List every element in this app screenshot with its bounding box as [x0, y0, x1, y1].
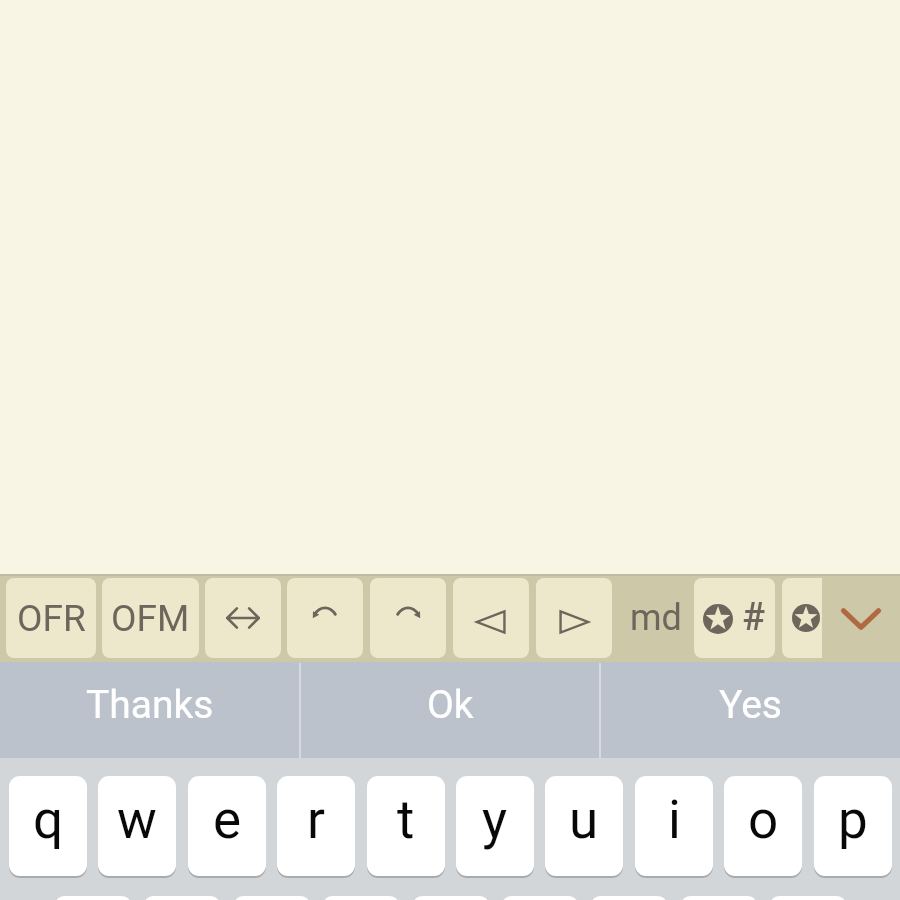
button[interactable]: Thanks [0, 662, 300, 759]
button[interactable]: e [188, 776, 266, 876]
button[interactable]: Undo [287, 578, 363, 658]
button[interactable]: Favorite [782, 578, 822, 658]
button[interactable]: y [456, 776, 534, 876]
staticText: w [117, 789, 157, 851]
staticText: OFR [17, 597, 86, 640]
staticText: OFM [111, 597, 190, 640]
button[interactable]: Resize [205, 578, 281, 658]
button[interactable]: s [143, 896, 221, 900]
button[interactable]: OFM [102, 578, 199, 658]
button[interactable]: u [545, 776, 623, 876]
button[interactable]: Ok [300, 662, 600, 759]
button[interactable]: Favorite [694, 578, 775, 658]
button[interactable]: Yes [600, 662, 900, 759]
button[interactable]: Collapse keyboard [826, 577, 896, 659]
staticText: Thanks [86, 682, 214, 728]
button[interactable]: q [9, 776, 87, 876]
other: Favorite [792, 604, 820, 632]
button[interactable]: Previous [453, 578, 529, 658]
button[interactable]: j [590, 896, 668, 900]
other: Favorite [703, 604, 733, 634]
staticText: Ok [427, 682, 474, 728]
other: Resize [226, 608, 260, 628]
button[interactable]: k [680, 896, 758, 900]
button[interactable]: i [635, 776, 713, 876]
other: Next [558, 611, 590, 633]
button[interactable]: h [501, 896, 579, 900]
staticText: Yes [719, 682, 782, 728]
button[interactable]: w [98, 776, 176, 876]
button[interactable]: r [277, 776, 355, 876]
button[interactable]: t [367, 776, 445, 876]
button[interactable]: Redo [370, 578, 446, 658]
button[interactable]: g [412, 896, 490, 900]
button[interactable]: l [769, 896, 847, 900]
button[interactable]: f [322, 896, 400, 900]
staticText: r [307, 789, 325, 851]
button[interactable]: d [233, 896, 311, 900]
staticText: e [213, 789, 242, 851]
other: Redo [395, 604, 421, 618]
staticText: q [33, 789, 64, 851]
staticText: i [668, 789, 681, 851]
staticText: t [397, 789, 415, 851]
staticText: # [742, 595, 766, 640]
button[interactable]: p [814, 776, 892, 876]
staticText: y [482, 789, 508, 851]
button[interactable]: o [724, 776, 802, 876]
staticText: md [630, 597, 682, 639]
staticText: u [569, 789, 599, 851]
staticText: p [838, 789, 868, 851]
other: Previous [475, 611, 507, 633]
other: Undo [312, 604, 338, 618]
button[interactable]: a [54, 896, 132, 900]
staticText: o [748, 789, 779, 851]
button[interactable]: Next [536, 578, 612, 658]
button[interactable]: OFR [6, 578, 96, 658]
